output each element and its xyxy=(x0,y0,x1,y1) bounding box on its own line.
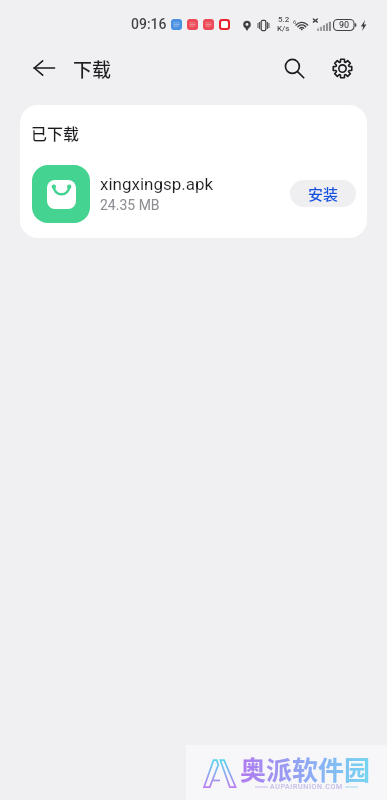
button[interactable]: Back xyxy=(29,53,59,83)
staticText: 下载 xyxy=(73,55,112,83)
staticText: 奥派软件园 xyxy=(240,750,371,788)
staticText: 90 xyxy=(339,20,350,31)
staticText: 6 xyxy=(293,18,297,25)
staticText: 安装 xyxy=(308,183,339,205)
staticText: 24.35 MB xyxy=(100,197,160,213)
button[interactable]: Settings xyxy=(327,53,357,83)
button[interactable]: xingxingsp.apk xyxy=(20,158,367,230)
staticText: 5.2 xyxy=(278,15,290,24)
staticText: xingxingsp.apk xyxy=(100,174,214,194)
button[interactable]: 安装 xyxy=(290,180,356,207)
button[interactable]: Search xyxy=(279,53,309,83)
staticText: AUPAIRUNION.COM xyxy=(270,783,343,791)
staticText: 已下载 xyxy=(31,121,80,144)
staticText: 09:16 xyxy=(131,16,167,32)
staticText: K/s xyxy=(277,24,290,33)
